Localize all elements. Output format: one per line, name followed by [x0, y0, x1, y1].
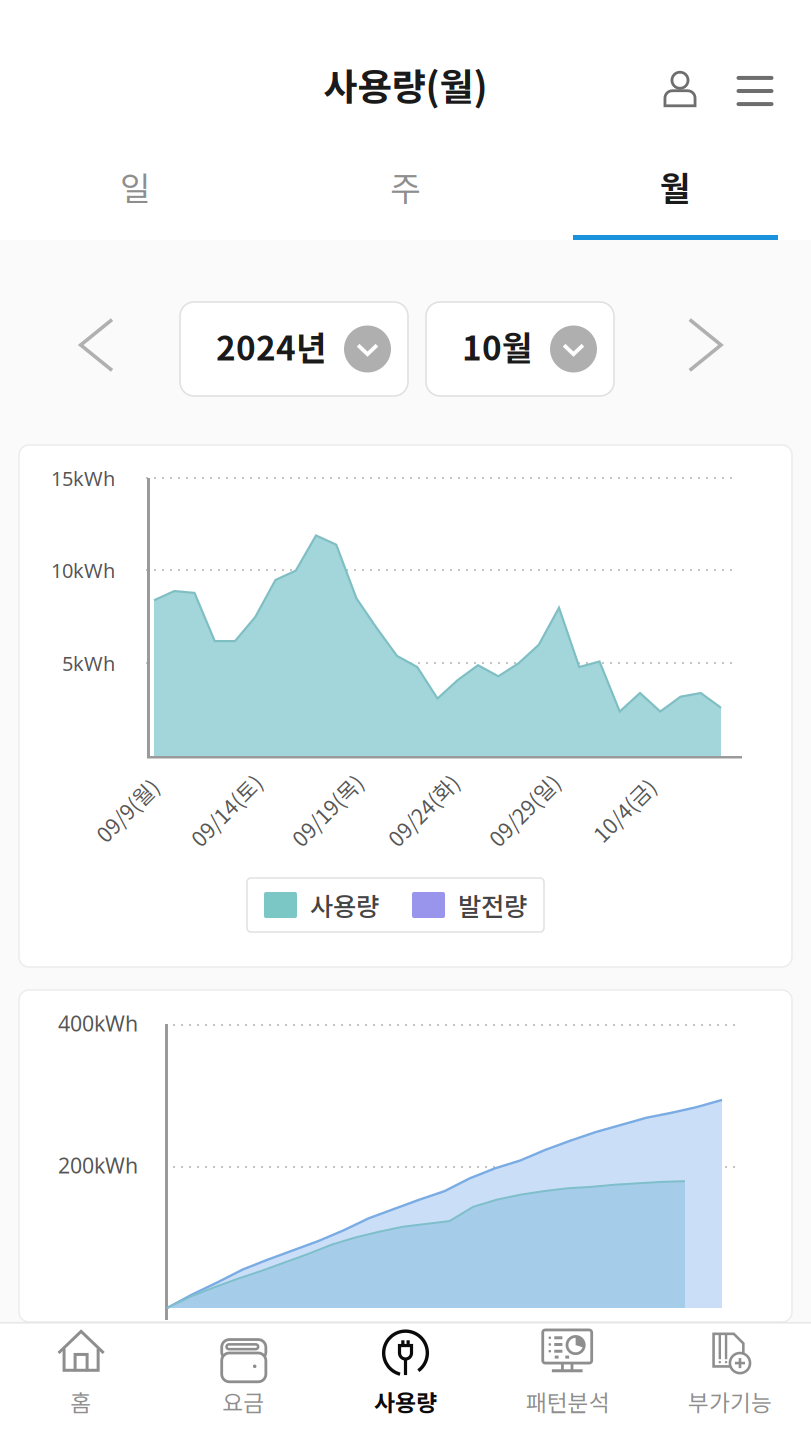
staticText: 패턴분석	[526, 1385, 610, 1418]
staticText: 월	[660, 162, 691, 211]
button[interactable]: 월	[540, 145, 810, 240]
staticText: 일	[120, 162, 151, 211]
staticText: 200kWh	[58, 1151, 138, 1179]
staticText: 400kWh	[58, 1009, 138, 1037]
staticText: 09/19(목)	[282, 795, 372, 825]
button[interactable]: 사용량	[324, 1322, 487, 1440]
button[interactable]: 요금	[162, 1322, 324, 1440]
button[interactable]: Next period	[654, 305, 734, 385]
staticText: 09/14(토)	[181, 795, 271, 825]
staticText: 10kWh	[51, 557, 115, 584]
button[interactable]: Account	[645, 54, 715, 124]
button[interactable]: 2024년	[180, 302, 408, 396]
staticText: 주	[390, 162, 421, 211]
staticText: 사용량	[374, 1385, 437, 1418]
staticText: 15kWh	[51, 465, 115, 492]
staticText: 09/24(화)	[378, 795, 468, 825]
staticText: 발전량	[458, 887, 527, 923]
staticText: 10월	[462, 322, 533, 370]
staticText: 사용량	[310, 887, 379, 923]
staticText: 요금	[222, 1385, 264, 1418]
staticText: 부가기능	[688, 1385, 772, 1418]
staticText: 09/29(일)	[479, 795, 569, 825]
button[interactable]: Menu	[720, 56, 790, 126]
button[interactable]: 홈	[0, 1322, 162, 1440]
staticText: 사용량(월)	[323, 57, 487, 112]
button[interactable]: 주	[270, 145, 540, 240]
staticText: 09/9(월)	[88, 795, 166, 825]
staticText: 10/4(금)	[585, 795, 663, 825]
button[interactable]: 부가기능	[649, 1322, 811, 1440]
button[interactable]: 일	[0, 145, 270, 240]
staticText: 홈	[71, 1385, 92, 1418]
staticText: 5kWh	[62, 650, 115, 677]
button[interactable]: Previous period	[45, 305, 125, 385]
staticText: 2024년	[216, 322, 327, 370]
button[interactable]: 10월	[426, 302, 614, 396]
button[interactable]: 패턴분석	[487, 1322, 649, 1440]
